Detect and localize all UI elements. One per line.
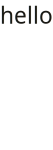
staticText: hello <box>0 0 53 30</box>
